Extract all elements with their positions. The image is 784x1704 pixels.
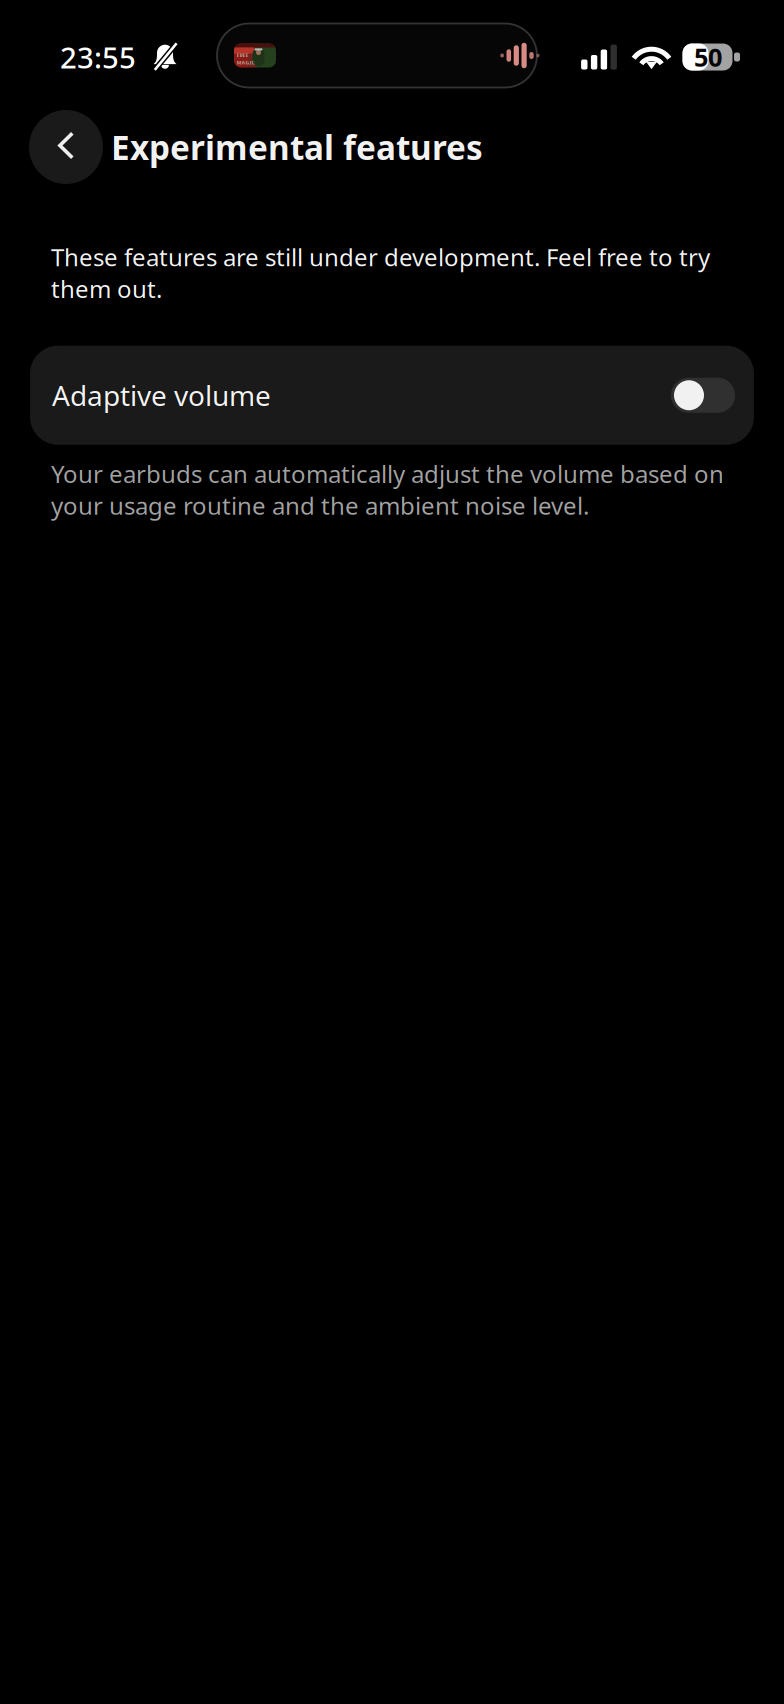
staticText: FREE <box>236 52 248 59</box>
staticText: Your earbuds can automatically adjust th… <box>51 458 724 521</box>
button[interactable]: Back <box>29 112 103 186</box>
staticText: Adaptive volume <box>52 377 271 414</box>
staticText: 50 <box>694 40 722 74</box>
staticText: Experimental features <box>111 125 483 169</box>
staticText: 23:55 <box>60 37 136 76</box>
button[interactable]: Adaptive volume <box>30 346 754 445</box>
staticText: These features are still under developme… <box>51 241 710 305</box>
staticText: MAGIC <box>236 59 254 66</box>
